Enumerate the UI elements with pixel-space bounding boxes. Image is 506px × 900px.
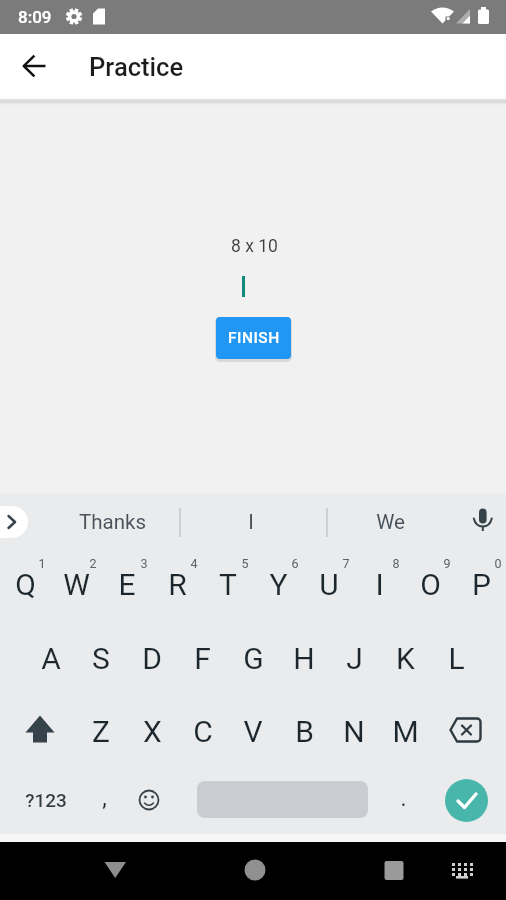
staticText: S: [92, 641, 110, 676]
staticText: 7: [342, 556, 350, 571]
button[interactable]: ?123: [18, 784, 74, 816]
staticText: X: [143, 714, 162, 749]
button[interactable]: H: [279, 624, 329, 692]
staticText: A: [41, 641, 61, 676]
button[interactable]: G: [228, 624, 278, 692]
button[interactable]: We: [360, 506, 420, 538]
staticText: P: [472, 567, 491, 602]
button[interactable]: Z: [76, 697, 126, 765]
staticText: E: [118, 567, 136, 602]
staticText: B: [295, 714, 314, 749]
staticText: V: [243, 714, 263, 749]
button[interactable]: Thanks: [72, 506, 152, 538]
button[interactable]: [11, 42, 59, 90]
button[interactable]: [0, 842, 168, 900]
staticText: I: [375, 567, 384, 602]
button[interactable]: C: [178, 697, 228, 765]
staticText: G: [243, 641, 264, 676]
button[interactable]: L: [431, 624, 481, 692]
button[interactable]: FINISH: [216, 317, 291, 359]
staticText: FINISH: [228, 329, 280, 347]
button[interactable]: [168, 842, 337, 900]
staticText: K: [396, 641, 415, 676]
staticText: Z: [92, 714, 110, 749]
staticText: 3: [140, 556, 148, 571]
staticText: 8:09: [18, 7, 52, 27]
button[interactable]: D: [127, 624, 177, 692]
button[interactable]: W: [51, 550, 101, 618]
button[interactable]: ,: [92, 782, 116, 814]
staticText: ?123: [25, 789, 67, 811]
staticText: M: [392, 714, 419, 749]
button[interactable]: [337, 842, 506, 900]
staticText: F: [194, 641, 211, 676]
staticText: Thanks: [79, 510, 146, 534]
button[interactable]: O: [405, 550, 455, 618]
button[interactable]: Y: [253, 550, 303, 618]
button[interactable]: B: [279, 697, 329, 765]
button[interactable]: I: [354, 550, 404, 618]
staticText: I: [248, 510, 254, 534]
staticText: O: [420, 567, 441, 602]
staticText: 1: [38, 556, 46, 571]
button[interactable]: X: [127, 697, 177, 765]
button[interactable]: N: [329, 697, 379, 765]
staticText: ,: [102, 785, 107, 812]
staticText: 8: [392, 556, 400, 571]
staticText: 4: [190, 556, 198, 571]
staticText: .: [400, 785, 407, 812]
button[interactable]: K: [380, 624, 430, 692]
staticText: J: [346, 641, 363, 676]
button[interactable]: Q: [0, 550, 50, 618]
button[interactable]: [0, 506, 28, 538]
button[interactable]: P: [456, 550, 506, 618]
staticText: N: [343, 714, 365, 749]
button[interactable]: [442, 704, 488, 756]
button[interactable]: [17, 704, 63, 756]
staticText: Q: [15, 567, 36, 602]
button[interactable]: R: [152, 550, 202, 618]
button[interactable]: I: [221, 506, 281, 538]
staticText: H: [293, 641, 315, 676]
staticText: T: [219, 567, 237, 602]
staticText: U: [319, 567, 339, 602]
button[interactable]: J: [329, 624, 379, 692]
button[interactable]: V: [228, 697, 278, 765]
staticText: 5: [241, 556, 249, 571]
button[interactable]: A: [26, 624, 76, 692]
button[interactable]: E: [102, 550, 152, 618]
button[interactable]: [445, 779, 488, 822]
staticText: D: [142, 641, 162, 676]
staticText: R: [168, 567, 187, 602]
button[interactable]: T: [203, 550, 253, 618]
button[interactable]: M: [380, 697, 430, 765]
staticText: 0: [494, 556, 502, 571]
staticText: C: [193, 714, 213, 749]
button[interactable]: .: [391, 782, 415, 814]
staticText: Practice: [89, 52, 184, 82]
staticText: We: [376, 510, 405, 534]
staticText: 6: [291, 556, 299, 571]
button[interactable]: S: [76, 624, 126, 692]
staticText: 8 x 10: [231, 236, 278, 257]
staticText: Y: [269, 567, 288, 602]
button[interactable]: F: [177, 624, 227, 692]
button[interactable]: U: [304, 550, 354, 618]
staticText: W: [63, 567, 90, 602]
staticText: L: [448, 641, 465, 676]
staticText: 9: [443, 556, 451, 571]
staticText: 2: [89, 556, 97, 571]
